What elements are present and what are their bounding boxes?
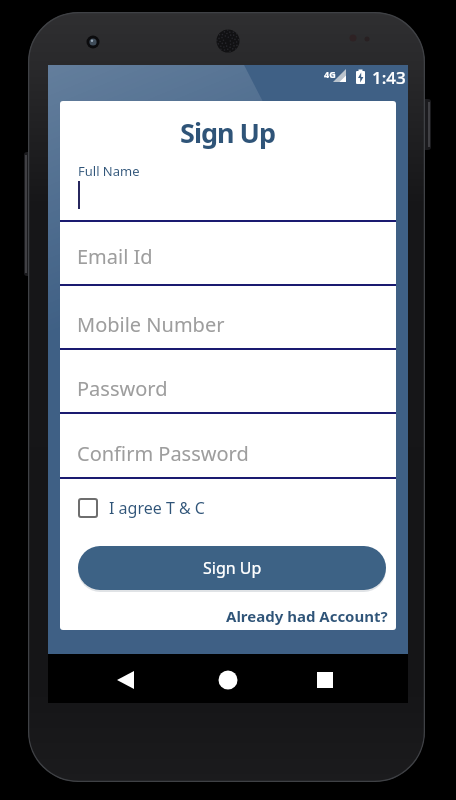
button[interactable]: Mobile Number bbox=[60, 286, 396, 348]
staticText: Email Id bbox=[77, 243, 153, 269]
button[interactable]: Already had Account? bbox=[226, 606, 388, 626]
staticText: 4G bbox=[324, 68, 336, 80]
button[interactable]: Sign Up bbox=[78, 546, 386, 590]
button[interactable]: Confirm Password bbox=[60, 414, 396, 477]
button[interactable] bbox=[288, 654, 408, 703]
staticText: Sign Up bbox=[180, 114, 276, 151]
button[interactable] bbox=[60, 156, 396, 220]
staticText: Password bbox=[77, 375, 168, 401]
button[interactable]: Password bbox=[60, 350, 396, 412]
button[interactable]: Email Id bbox=[60, 222, 396, 284]
button[interactable] bbox=[168, 654, 288, 703]
staticText: Confirm Password bbox=[77, 440, 249, 466]
button[interactable] bbox=[48, 654, 168, 703]
staticText: I agree T & C bbox=[109, 497, 205, 519]
staticText: Full Name bbox=[78, 162, 140, 180]
staticText: Mobile Number bbox=[77, 311, 225, 337]
staticText: 1:43 bbox=[372, 66, 406, 89]
button[interactable]: I agree T & C bbox=[78, 491, 396, 525]
staticText: Sign Up bbox=[203, 557, 262, 579]
